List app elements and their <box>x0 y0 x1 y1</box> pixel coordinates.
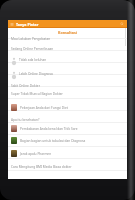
staticText: Sedang Online Pemeriksaan <box>11 47 54 51</box>
button[interactable]: Open navigation menu <box>8 20 127 28</box>
button[interactable]: Cara Mengitung BMI Media Biasa dokter <box>11 165 72 169</box>
staticText: Cara Mengitung BMI Media Biasa dokter <box>11 165 72 169</box>
staticText: Mau Lakukan Pengobatan <box>11 37 51 41</box>
button[interactable]: Mau Lakukan Pengobatan <box>11 37 51 41</box>
staticText: Super Tidak Muncul Bagian Dokter <box>11 92 63 96</box>
other: Open navigation menu <box>10 22 14 26</box>
button[interactable]: Sakit Online Dokter <box>11 84 40 88</box>
other: Search <box>120 22 124 26</box>
staticText: Apa itu kesehatan? <box>11 118 40 122</box>
button[interactable]: Pekerjaan Anda dari Fungsi Diet <box>11 104 68 111</box>
button[interactable]: Sedang Online Pemeriksaan <box>11 47 54 51</box>
staticText: Tidak ada keluhan <box>19 58 47 62</box>
button[interactable]: Konsultasi <box>8 28 127 37</box>
button[interactable]: Apa itu kesehatan? <box>11 118 40 122</box>
staticText: Lebih Online Diagnosa <box>19 72 53 76</box>
staticText: Pembakaran Anda kenal dan Titik Sore <box>20 127 78 131</box>
staticText: Jarak apalu Pharmen <box>20 152 52 156</box>
staticText: Tanya Pintar <box>16 22 39 27</box>
button[interactable]: Tidak ada keluhan <box>11 56 47 63</box>
staticText: Sakit Online Dokter <box>11 84 40 88</box>
staticText: Pekerjaan Anda dari Fungsi Diet <box>20 106 68 110</box>
button[interactable]: Jarak apalu Pharmen <box>11 150 52 157</box>
button[interactable]: Pembakaran Anda kenal dan Titik Sore <box>11 125 78 132</box>
button[interactable]: Bagian bagian untuk tabulasi dan Diagnos… <box>11 137 86 144</box>
button[interactable]: Super Tidak Muncul Bagian Dokter <box>11 92 63 96</box>
staticText: Bagian bagian untuk tabulasi dan Diagnos… <box>20 139 86 143</box>
button[interactable]: Lebih Online Diagnosa <box>11 70 53 77</box>
staticText: Konsultasi <box>58 30 77 35</box>
